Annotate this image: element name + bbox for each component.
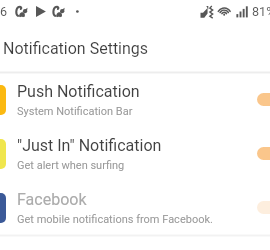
- staticText: System Notification Bar: [17, 105, 133, 118]
- button[interactable]: Push Notification: [0, 73, 270, 127]
- button[interactable]: Facebook: [0, 181, 270, 235]
- staticText: Facebook: [17, 190, 87, 209]
- other: Toggle Facebook: [257, 201, 270, 214]
- other: Toggle "Just In" Notification: [257, 147, 270, 160]
- other: Toggle Push Notification: [257, 93, 270, 106]
- staticText: 6: [0, 4, 8, 19]
- staticText: "Just In" Notification: [17, 136, 162, 155]
- staticText: Push Notification: [17, 82, 140, 101]
- button[interactable]: "Just In" Notification: [0, 127, 270, 181]
- staticText: Get alert when surfing: [17, 159, 125, 172]
- staticText: Get mobile notifications from Facebook.: [17, 213, 213, 226]
- staticText: Notification Settings: [3, 39, 149, 58]
- staticText: 81%: [252, 4, 270, 19]
